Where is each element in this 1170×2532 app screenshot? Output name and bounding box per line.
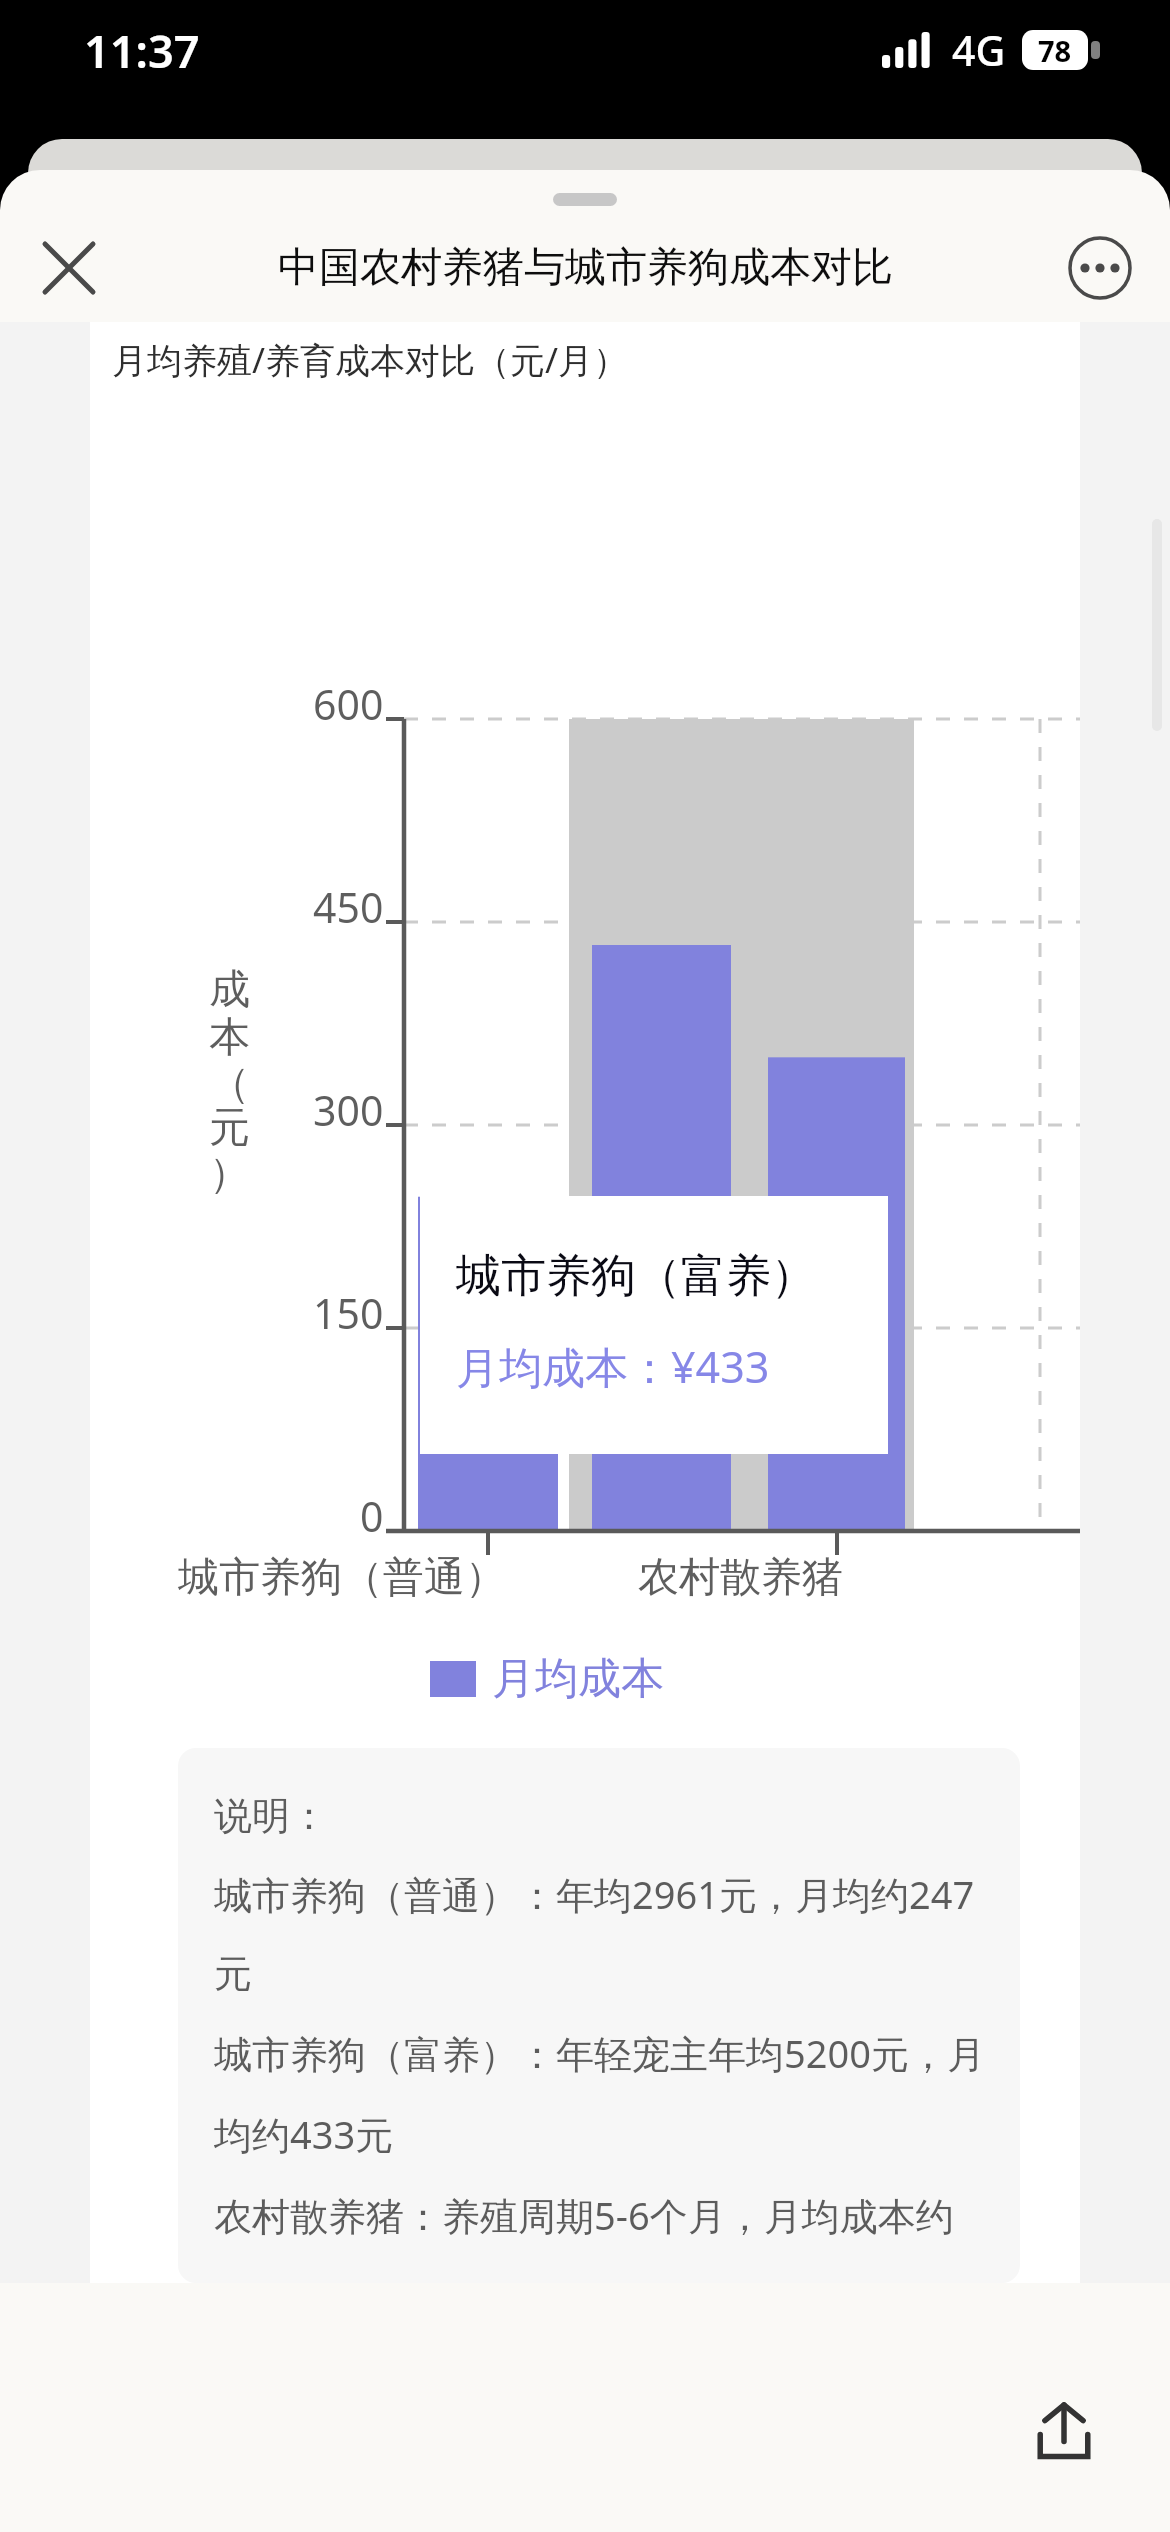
staticText: 0 [360,1488,384,1544]
staticText: 城市养狗（富养） [456,1248,816,1305]
staticText: 450 [313,879,384,935]
staticText: 本 [209,1012,250,1064]
staticText: @AI经济 [579,1262,715,1310]
staticText: 农村散养猪 [638,1552,843,1604]
staticText: 300 [313,1082,384,1138]
staticText: 成 [209,964,250,1016]
staticText: （ [209,1058,250,1110]
staticText: 4G [952,22,1006,78]
staticText: 说明： 城市养狗（普通）：年均2961元，月均约247元 城市养狗（富养）：年轻… [214,1792,1000,2239]
staticText: 城市养狗（普通） [178,1552,506,1604]
staticText: 月均成本：¥433 [456,1337,770,1396]
button[interactable]: Share [1016,2383,1112,2479]
staticText: 元 [209,1102,250,1154]
button[interactable]: Close [28,227,110,309]
staticText: 150 [313,1285,384,1341]
button[interactable]: More options [1058,226,1142,310]
staticText: 11:37 [84,20,200,81]
staticText: 78 [1038,31,1072,70]
staticText: ） [209,1148,250,1200]
staticText: 月均养殖/养育成本对比（元/月） [112,336,629,384]
staticText: 中国农村养猪与城市养狗成本对比 [278,242,893,294]
staticText: 月均成本 [492,1652,664,1706]
staticText: 600 [313,676,384,732]
